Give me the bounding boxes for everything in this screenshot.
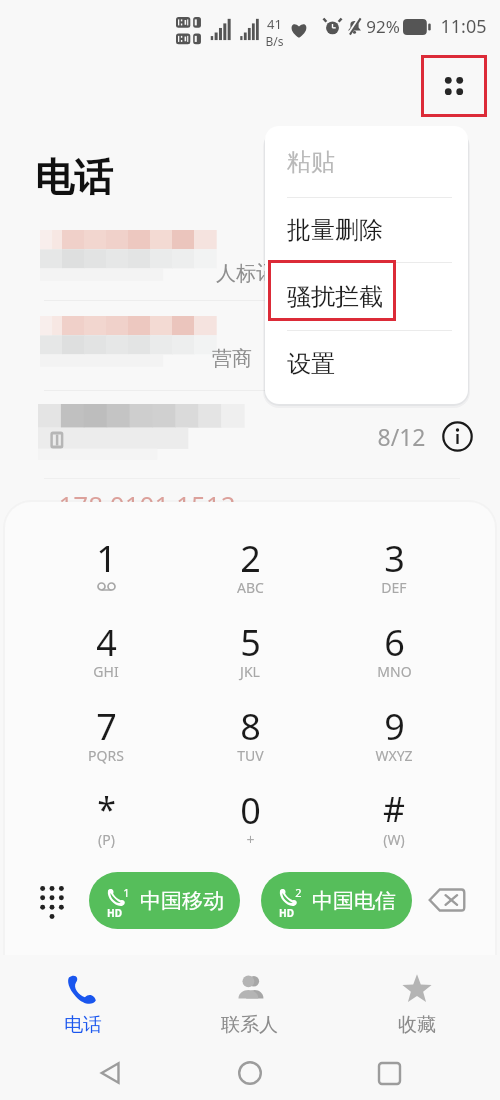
button[interactable]: Back: [83, 1046, 139, 1100]
button[interactable]: More options: [421, 55, 487, 117]
staticText: 11:05: [440, 14, 487, 39]
staticText: HD: [107, 906, 122, 920]
button[interactable]: Home: [222, 1046, 278, 1100]
button[interactable]: 3: [322, 534, 466, 618]
staticText: 8/12: [377, 421, 426, 452]
staticText: 4: [96, 618, 117, 667]
button[interactable]: Recents: [361, 1046, 417, 1100]
button[interactable]: 5: [178, 618, 322, 702]
staticText: 0: [240, 786, 261, 835]
staticText: 3: [384, 534, 405, 583]
staticText: 设置: [287, 349, 335, 379]
staticText: 2: [295, 885, 302, 900]
button[interactable]: *: [34, 786, 178, 870]
button[interactable]: 收藏: [333, 955, 500, 1040]
staticText: 2: [240, 534, 261, 583]
staticText: 中国移动: [140, 888, 224, 914]
button[interactable]: 设置: [265, 331, 468, 397]
staticText: 粘贴: [287, 147, 335, 177]
staticText: DEF: [381, 578, 407, 597]
button[interactable]: 电话: [0, 955, 166, 1040]
staticText: 178 0101 1512: [58, 487, 236, 522]
staticText: 中国电信: [312, 888, 396, 914]
staticText: 1: [96, 534, 117, 583]
button[interactable]: Backspace: [424, 882, 470, 918]
button[interactable]: 7: [34, 702, 178, 786]
staticText: 8: [240, 702, 261, 751]
button[interactable]: 批量删除: [265, 198, 468, 262]
staticText: TUV: [237, 746, 264, 765]
staticText: ABC: [237, 578, 264, 597]
staticText: 9: [384, 702, 405, 751]
staticText: GHI: [93, 662, 119, 681]
staticText: *: [97, 786, 116, 832]
button[interactable]: Call details: [441, 420, 473, 452]
staticText: (P): [98, 830, 115, 849]
button[interactable]: 1: [89, 872, 240, 929]
staticText: 联系人: [221, 1013, 278, 1037]
staticText: 41: [267, 15, 282, 33]
staticText: (W): [383, 830, 405, 849]
staticText: 人标记: [216, 261, 276, 286]
staticText: 批量删除: [287, 215, 383, 245]
button[interactable]: #: [322, 786, 466, 870]
button[interactable]: 骚扰拦截: [265, 263, 468, 330]
button[interactable]: 联系人: [166, 955, 333, 1040]
staticText: B/s: [265, 33, 284, 49]
staticText: 92%: [366, 15, 400, 38]
staticText: 7: [96, 702, 117, 751]
button[interactable]: 2: [178, 534, 322, 618]
button[interactable]: 2: [261, 872, 412, 929]
button[interactable]: 9: [322, 702, 466, 786]
staticText: 营商: [212, 346, 252, 371]
staticText: 骚扰拦截: [287, 282, 383, 312]
button[interactable]: 0: [178, 786, 322, 870]
staticText: MNO: [377, 662, 412, 681]
staticText: JKL: [240, 662, 260, 681]
button[interactable]: 8: [178, 702, 322, 786]
staticText: PQRS: [88, 746, 124, 765]
button[interactable]: Dialpad: [31, 879, 73, 921]
staticText: 收藏: [398, 1013, 436, 1037]
button[interactable]: 粘贴: [265, 126, 468, 197]
staticText: #: [383, 786, 405, 832]
button[interactable]: 4: [34, 618, 178, 702]
staticText: +: [246, 830, 255, 849]
staticText: 电话: [64, 1013, 102, 1037]
staticText: 6: [384, 618, 405, 667]
button[interactable]: 6: [322, 618, 466, 702]
staticText: 5: [240, 618, 261, 667]
button[interactable]: 1: [34, 534, 178, 618]
staticText: 1: [123, 885, 130, 900]
staticText: HD: [279, 906, 294, 920]
staticText: WXYZ: [375, 746, 413, 765]
staticText: 电话: [35, 153, 113, 202]
